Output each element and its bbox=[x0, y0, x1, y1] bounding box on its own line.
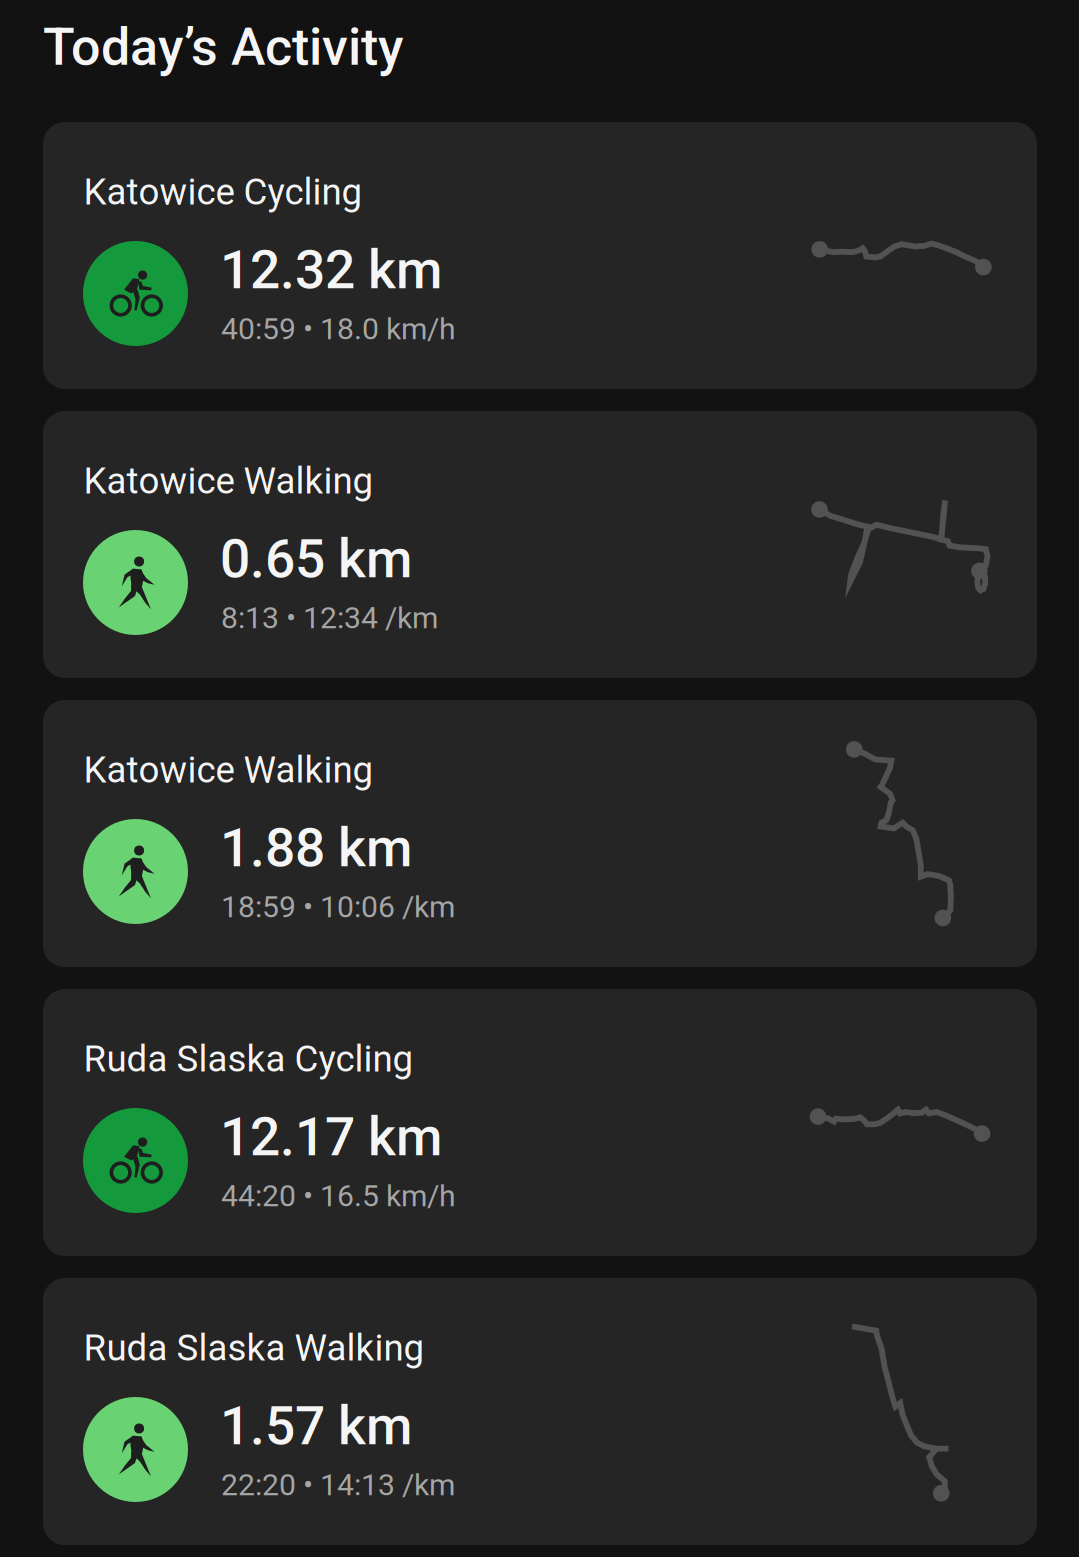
staticText: 18:59 • 10:06 /km bbox=[221, 889, 455, 925]
staticText: 0.65 km bbox=[220, 528, 412, 590]
button[interactable]: Katowice Walking bbox=[43, 411, 1037, 678]
staticText: Katowice Walking bbox=[83, 748, 373, 791]
staticText: Today’s Activity bbox=[43, 16, 403, 77]
staticText: 1.88 km bbox=[220, 817, 412, 879]
staticText: 40:59 • 18.0 km/h bbox=[221, 311, 456, 347]
staticText: 44:20 • 16.5 km/h bbox=[221, 1178, 456, 1214]
button[interactable]: Katowice Walking bbox=[43, 700, 1037, 967]
staticText: 22:20 • 14:13 /km bbox=[221, 1467, 455, 1503]
staticText: 12.17 km bbox=[220, 1106, 442, 1168]
staticText: 12.32 km bbox=[220, 239, 442, 301]
button[interactable]: Ruda Slaska Walking bbox=[43, 1278, 1037, 1545]
button[interactable]: Katowice Cycling bbox=[43, 122, 1037, 389]
button[interactable]: Ruda Slaska Cycling bbox=[43, 989, 1037, 1256]
staticText: Ruda Slaska Cycling bbox=[83, 1037, 413, 1080]
staticText: 1.57 km bbox=[220, 1395, 412, 1457]
staticText: 8:13 • 12:34 /km bbox=[221, 600, 438, 636]
staticText: Katowice Walking bbox=[83, 459, 373, 502]
staticText: Katowice Cycling bbox=[83, 170, 362, 213]
staticText: Ruda Slaska Walking bbox=[83, 1326, 424, 1369]
